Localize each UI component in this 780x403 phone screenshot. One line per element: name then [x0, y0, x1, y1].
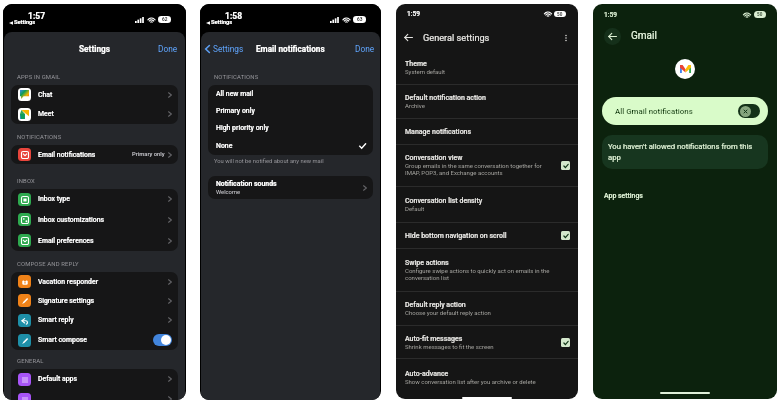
button[interactable]: Conversation view: [396, 145, 578, 186]
staticText: Vacation responder: [38, 278, 99, 286]
button[interactable]: Manage notifications: [396, 119, 578, 144]
staticText: Theme: [405, 60, 427, 68]
staticText: 50: [757, 12, 763, 17]
button[interactable]: Default notification action: [396, 85, 578, 118]
staticText: 63: [357, 17, 363, 23]
staticText: None: [216, 142, 233, 150]
staticText: Done: [355, 44, 375, 54]
staticText: COMPOSE AND REPLY: [17, 261, 79, 268]
staticText: Archive: [405, 102, 425, 109]
staticText: Inbox customizations: [38, 216, 105, 224]
button[interactable]: All Gmail notifications: [602, 97, 768, 125]
button[interactable]: Primary only: [208, 102, 373, 119]
staticText: 1:59: [407, 10, 420, 18]
staticText: Settings: [211, 19, 233, 26]
staticText: 1:58: [225, 11, 243, 21]
button[interactable]: Hide bottom navigation on scroll: [396, 223, 578, 248]
staticText: Welcome: [216, 189, 241, 196]
staticText: Conversation view: [405, 154, 463, 162]
staticText: Swipe actions: [405, 259, 449, 267]
staticText: Default apps: [38, 375, 77, 383]
staticText: You will not be notified about any new m…: [214, 158, 324, 165]
staticText: Default: [405, 205, 425, 212]
staticText: Smart compose: [38, 336, 88, 344]
staticText: 1:59: [604, 11, 617, 19]
staticText: Settings: [213, 44, 244, 54]
button[interactable]: Meet: [11, 104, 178, 124]
staticText: Chat: [38, 91, 53, 99]
staticText: Notification sounds: [216, 180, 277, 188]
staticText: GENERAL: [17, 358, 44, 365]
button[interactable]: Notification sounds: [208, 176, 373, 199]
staticText: APPS IN GMAIL: [17, 74, 61, 81]
button[interactable]: App settings: [604, 192, 643, 200]
staticText: Email notifications: [256, 44, 325, 54]
staticText: Manage notifications: [405, 128, 472, 136]
button[interactable]: All new mail: [208, 85, 373, 102]
staticText: Show conversation list after you archive…: [405, 378, 536, 385]
button[interactable]: Signature settings: [11, 291, 178, 310]
button[interactable]: Theme: [396, 51, 578, 84]
button[interactable]: Swipe actions: [396, 249, 578, 291]
button[interactable]: Email preferences: [11, 230, 178, 251]
button[interactable]: Done: [148, 39, 185, 59]
button[interactable]: Smart compose: [11, 330, 178, 350]
staticText: Auto-advance: [405, 370, 449, 378]
staticText: Done: [158, 44, 178, 54]
staticText: All Gmail notifications: [615, 107, 693, 116]
button[interactable]: Vacation responder: [11, 272, 178, 291]
staticText: High priority only: [216, 124, 269, 132]
staticText: 62: [162, 17, 168, 23]
staticText: Choose your default reply action: [405, 309, 491, 316]
button[interactable]: High priority only: [208, 119, 373, 137]
staticText: Email preferences: [38, 237, 94, 245]
button[interactable]: Conversation list density: [396, 187, 578, 222]
staticText: You haven't allowed notifications from t…: [608, 142, 759, 162]
staticText: General settings: [423, 32, 490, 43]
button[interactable]: Settings: [201, 39, 250, 59]
staticText: Email notifications: [38, 151, 96, 159]
button[interactable]: Email notifications: [11, 145, 178, 164]
staticText: Hide bottom navigation on scroll: [405, 232, 507, 240]
staticText: Meet: [38, 110, 54, 118]
staticText: Gmail: [631, 30, 657, 42]
staticText: Signature settings: [38, 297, 95, 305]
staticText: Auto-fit messages: [405, 335, 463, 343]
staticText: Primary only: [132, 151, 165, 158]
staticText: Settings: [14, 19, 36, 26]
staticText: Settings: [79, 44, 111, 54]
button[interactable]: Done: [347, 39, 380, 59]
staticText: Default reply action: [405, 301, 466, 309]
button[interactable]: Chat: [11, 85, 178, 104]
staticText: NOTIFICATIONS: [214, 74, 259, 81]
staticText: NOTIFICATIONS: [17, 134, 62, 141]
staticText: 50: [557, 12, 563, 17]
staticText: System default: [405, 68, 446, 75]
staticText: Default notification action: [405, 94, 486, 102]
button[interactable]: Back: [402, 31, 415, 44]
button[interactable]: [153, 334, 172, 346]
button[interactable]: Auto-advance: [396, 359, 578, 396]
staticText: All new mail: [216, 90, 254, 98]
button[interactable]: None: [208, 137, 373, 155]
staticText: 1:57: [28, 11, 46, 21]
button[interactable]: Default apps: [11, 369, 178, 389]
staticText: INBOX: [17, 178, 35, 185]
button[interactable]: Auto-fit messages: [396, 326, 578, 358]
button[interactable]: Inbox customizations: [11, 209, 178, 230]
staticText: Conversation list density: [405, 197, 483, 205]
button[interactable]: Inbox type: [11, 189, 178, 209]
staticText: Primary only: [216, 107, 255, 115]
button[interactable]: [11, 389, 178, 400]
staticText: Group emails in the same conversation to…: [405, 162, 555, 177]
button[interactable]: Default reply action: [396, 292, 578, 325]
staticText: Configure swipe actions to quickly act o…: [405, 267, 570, 282]
staticText: Shrink messages to fit the screen: [405, 343, 494, 350]
staticText: Smart reply: [38, 316, 74, 324]
button[interactable]: Back: [604, 28, 621, 45]
staticText: Inbox type: [38, 195, 70, 203]
button[interactable]: Smart reply: [11, 310, 178, 330]
button[interactable]: More options: [559, 31, 572, 44]
